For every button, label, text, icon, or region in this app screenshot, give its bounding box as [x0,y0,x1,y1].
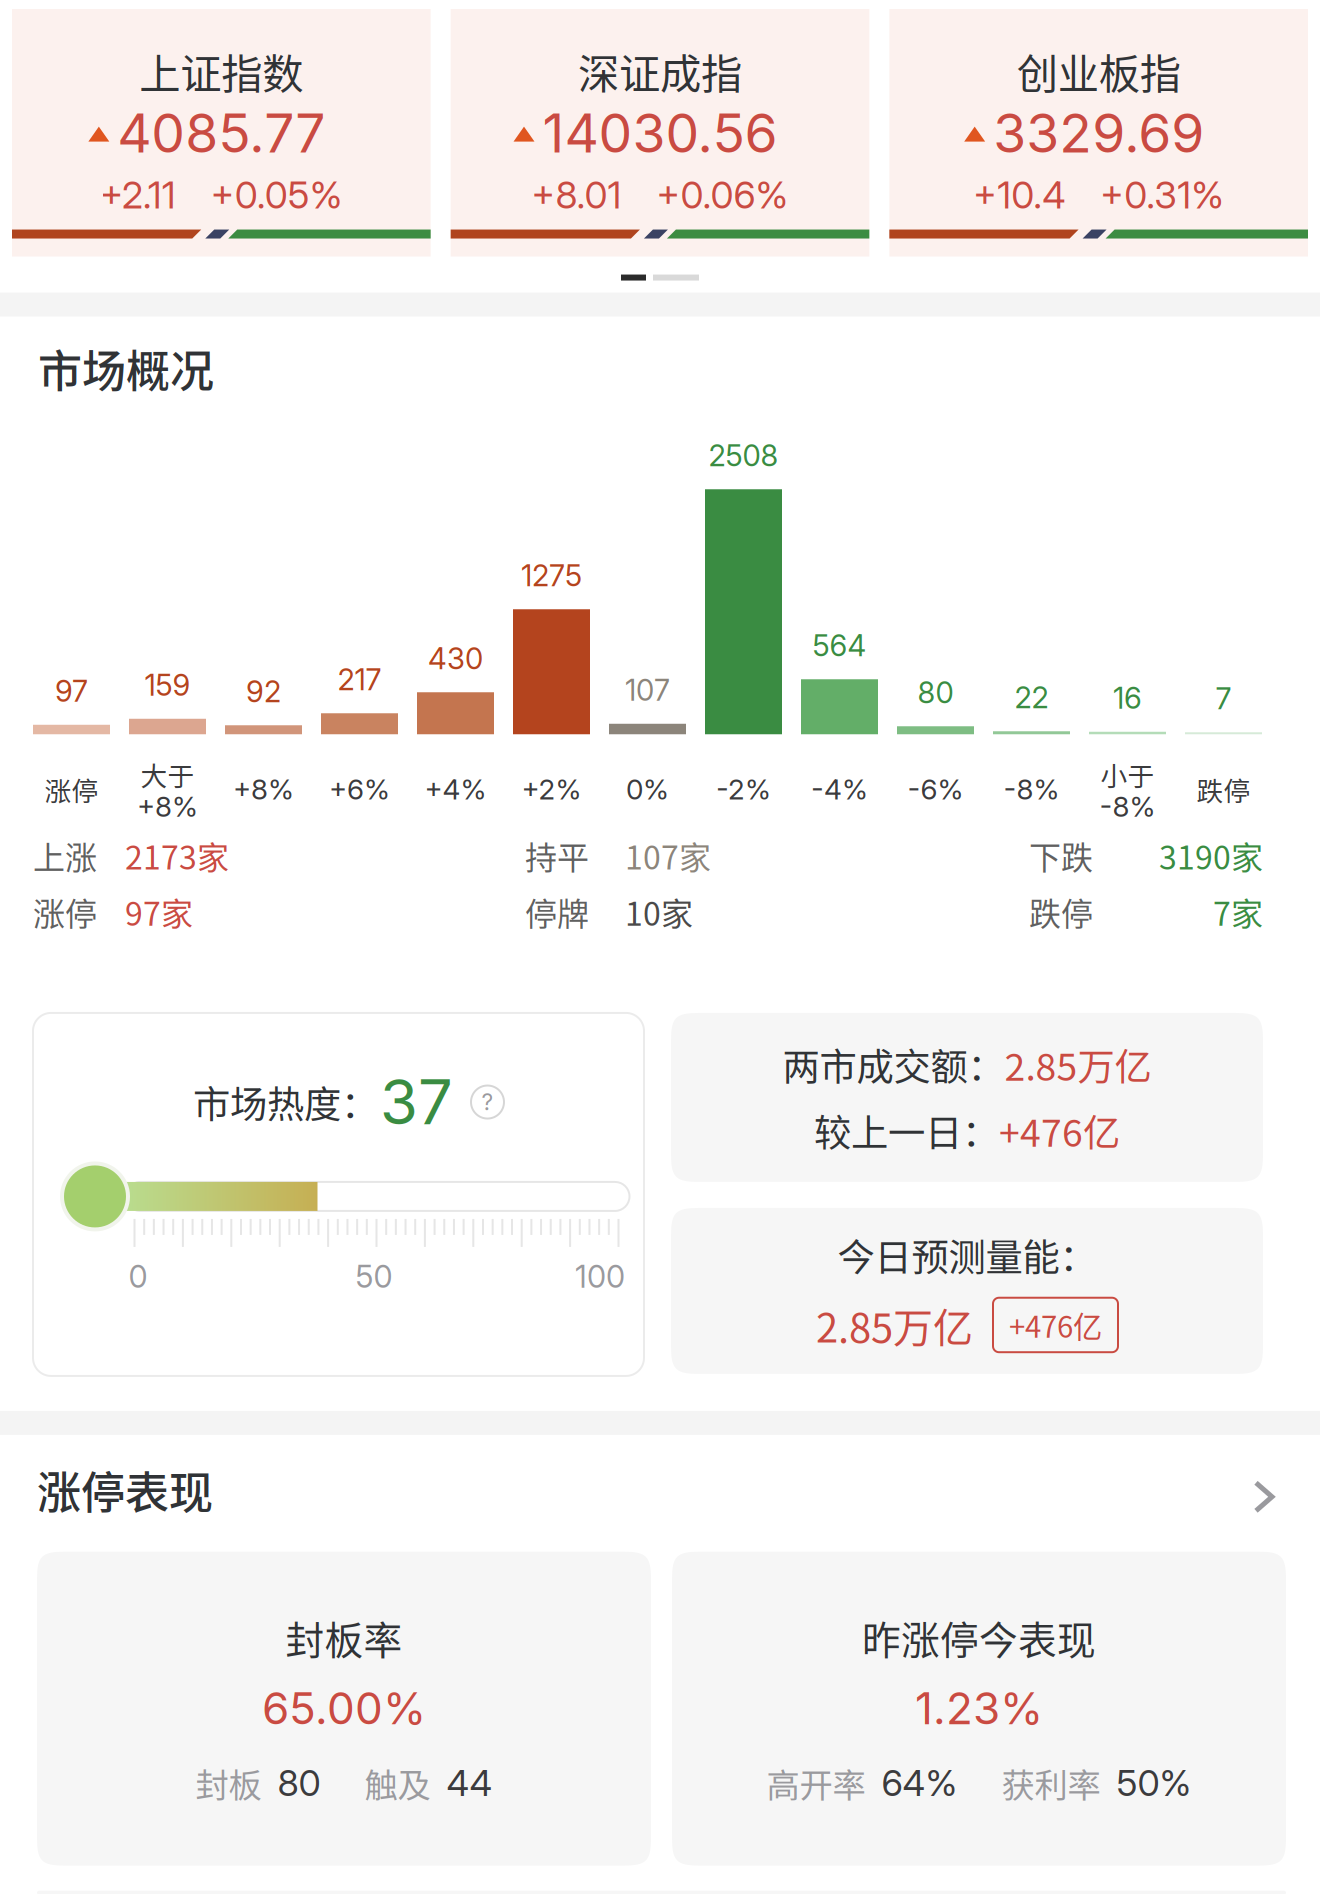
staticText: -8% [1099,790,1155,823]
staticText: 今日预测量能： [837,1228,1096,1282]
staticText: 触及 [364,1759,430,1807]
staticText: 跌停 [1196,770,1250,809]
staticText: 50 [355,1258,392,1295]
staticText: 3190家 [1159,832,1263,879]
staticText: 64% [881,1761,957,1805]
staticText: +2% [521,772,581,806]
staticText: 97 [55,673,88,709]
staticText: -8% [1003,772,1059,806]
staticText: 1275 [521,558,582,593]
staticText: 昨涨停今表现 [862,1610,1096,1666]
staticText: 涨停表现 [37,1458,213,1522]
staticText: 大于 [140,755,194,794]
staticText: 4085.77 [117,101,325,165]
staticText: +8.01 [531,172,621,218]
staticText: 7 [1215,681,1231,716]
staticText: +4% [424,772,486,806]
staticText: 16 [1113,680,1142,716]
staticText: +476亿 [999,1103,1120,1157]
staticText: 1.23% [915,1682,1043,1735]
staticText: 创业板指 [1017,41,1181,101]
staticText: 封板率 [285,1610,402,1666]
staticText: 2173家 [125,832,229,879]
staticText: 3329.69 [993,101,1204,165]
staticText: 14030.56 [542,101,777,165]
button[interactable]: 昨涨停今表现 [672,1552,1286,1866]
staticText: 100 [575,1258,625,1295]
staticText: 涨停 [33,889,97,935]
button[interactable]: 创业板指 [889,9,1308,257]
button[interactable]: 深证成指 [451,9,869,257]
staticText: 2.85万亿 [1004,1037,1151,1091]
staticText: 159 [144,667,190,703]
staticText: 107家 [625,832,711,879]
staticText: 92 [246,674,281,709]
staticText: ? [481,1088,493,1116]
staticText: 获利率 [1001,1759,1100,1807]
staticText: 小于 [1100,755,1154,794]
staticText: -6% [907,772,963,806]
staticText: 97家 [125,889,193,935]
staticText: 停牌 [525,889,589,935]
staticText: +2.11 [100,172,176,218]
staticText: 2508 [708,438,778,473]
staticText: 两市成交额： [782,1037,1004,1091]
staticText: 市场概况 [38,337,214,400]
staticText: 深证成指 [578,41,742,101]
staticText: 2.85万亿 [816,1296,973,1354]
staticText: 10家 [625,889,693,935]
staticText: 封板 [195,1759,261,1807]
staticText: +10.4 [973,172,1065,218]
staticText: 564 [812,628,866,663]
staticText: 37 [380,1065,453,1139]
staticText: 上证指数 [139,41,303,101]
staticText: 跌停 [1029,889,1093,935]
staticText: 高开率 [766,1759,865,1807]
staticText: +8% [137,790,198,823]
staticText: +0.05% [211,172,343,218]
staticText: +476亿 [1009,1304,1102,1346]
staticText: 22 [1014,680,1048,715]
staticText: 7家 [1213,889,1263,935]
staticText: 217 [337,662,381,697]
staticText: 80 [277,1761,320,1805]
staticText: 0 [128,1258,147,1295]
staticText: +8% [233,772,294,806]
staticText: -2% [716,772,771,806]
staticText: 涨停 [44,770,98,809]
staticText: -4% [811,772,868,806]
staticText: 下跌 [1029,832,1093,879]
staticText: +0.06% [656,172,788,218]
staticText: +0.31% [1100,172,1224,218]
staticText: 较上一日： [814,1103,999,1157]
staticText: 0% [626,772,669,806]
staticText: +6% [329,772,390,806]
staticText: 107 [625,672,670,708]
staticText: 持平 [525,832,589,879]
staticText: 80 [917,675,953,710]
staticText: 65.00% [262,1682,426,1735]
button[interactable]: 封板率 [37,1552,651,1866]
button[interactable]: 上证指数 [12,9,431,257]
staticText: 市场热度： [193,1075,378,1129]
staticText: 上涨 [33,832,97,879]
staticText: 44 [446,1761,492,1805]
staticText: 50% [1116,1761,1191,1805]
button[interactable]: 涨停表现 [37,1458,1286,1522]
staticText: 430 [428,641,483,676]
